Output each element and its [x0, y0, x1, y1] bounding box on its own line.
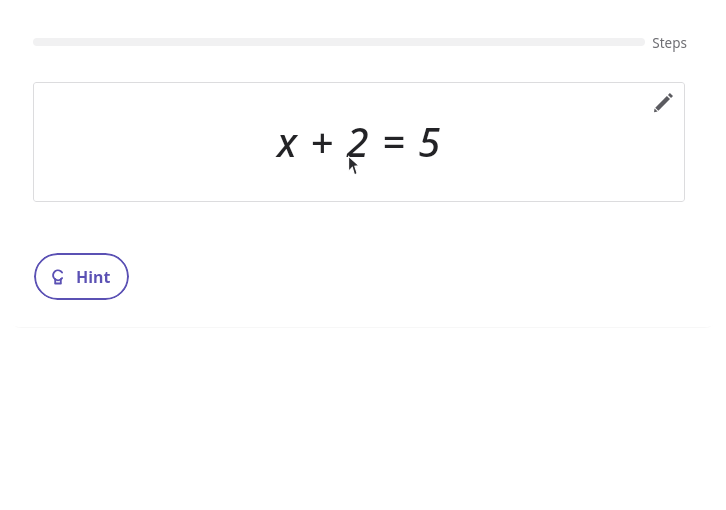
button[interactable]: Hint — [34, 253, 129, 300]
button[interactable]: Edit equation — [652, 90, 676, 114]
staticText: x + 2 = 5 — [277, 114, 442, 168]
staticText: Hint — [76, 266, 111, 288]
staticText: Steps — [652, 34, 687, 52]
